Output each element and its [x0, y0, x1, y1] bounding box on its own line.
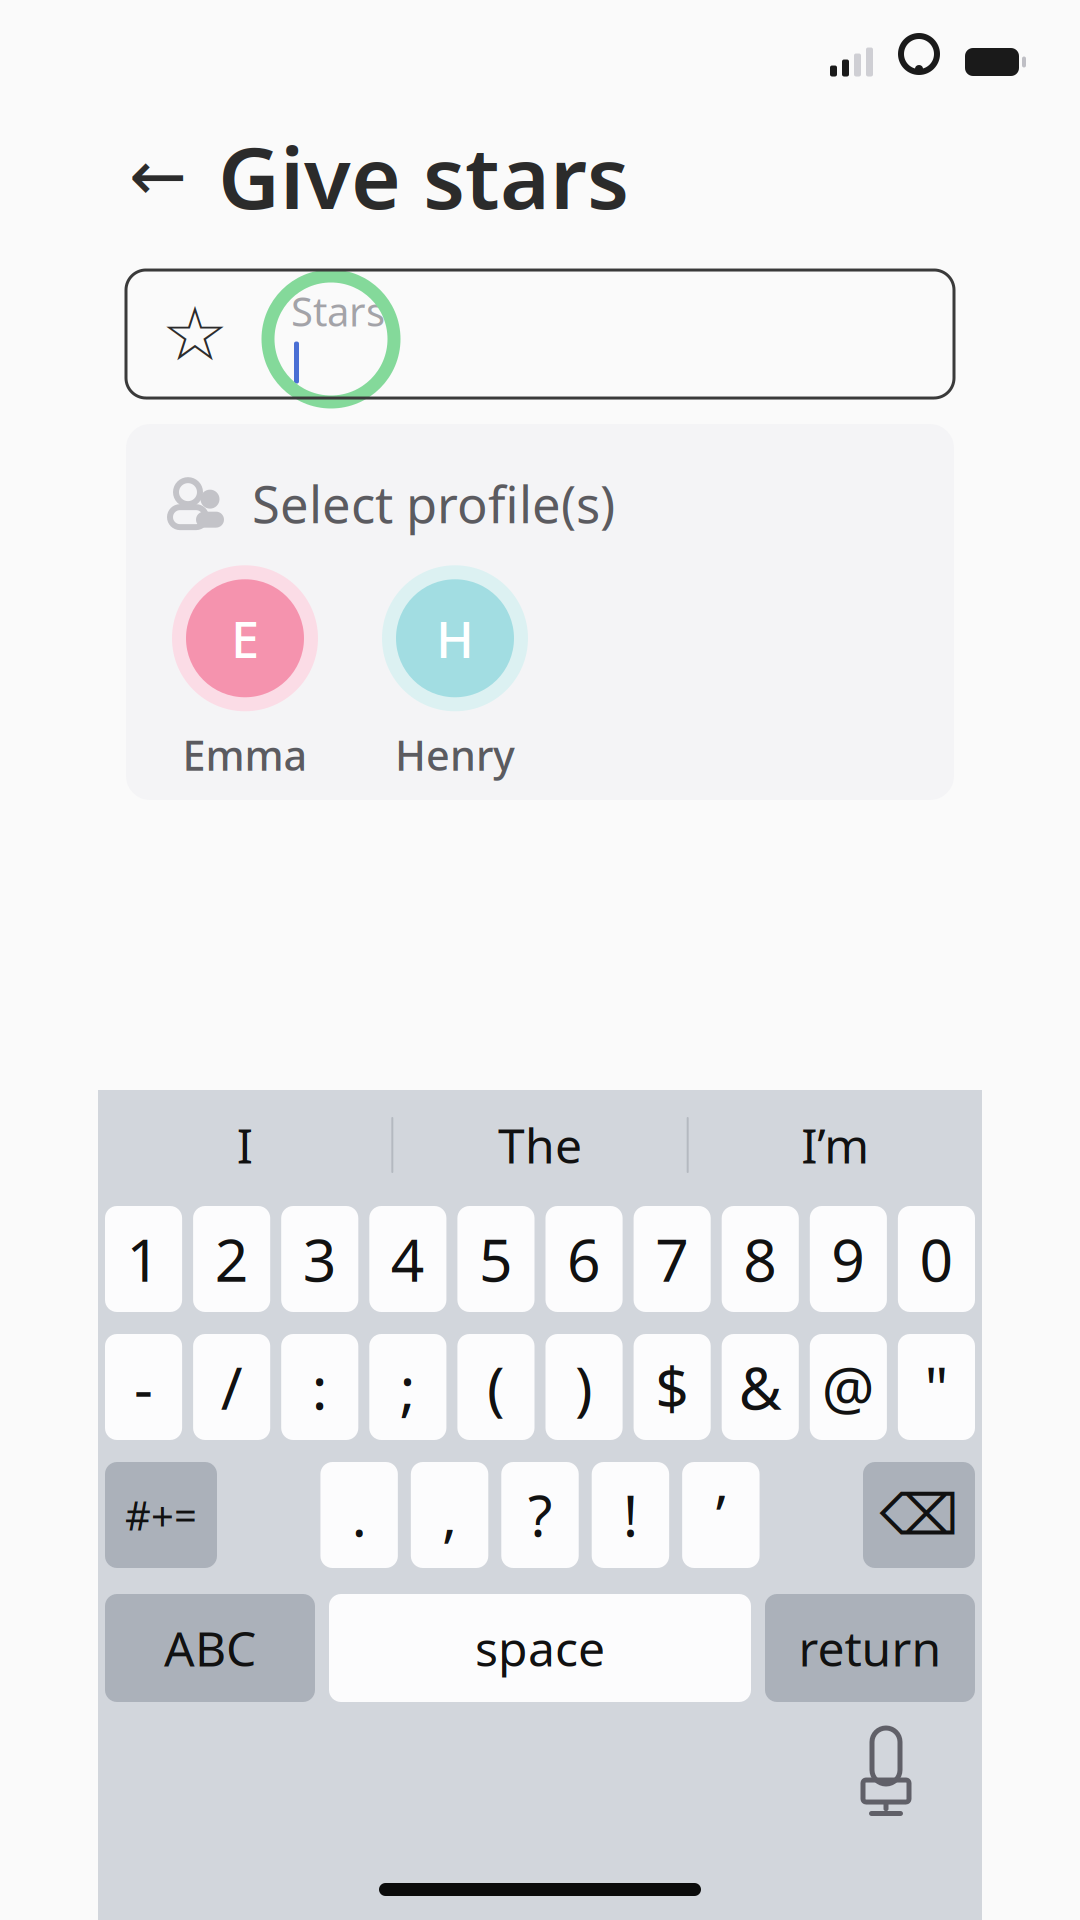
staticText: I’m [801, 1113, 869, 1177]
button[interactable]: 4 [369, 1206, 446, 1312]
button[interactable]: I [98, 1090, 391, 1200]
staticText: ; [400, 1348, 416, 1426]
staticText: 1 [127, 1220, 161, 1298]
staticText: Henry [395, 727, 515, 782]
button[interactable]: " [898, 1334, 975, 1440]
staticText: ? [528, 1478, 552, 1552]
button[interactable]: #+= [105, 1462, 217, 1568]
button[interactable]: / [193, 1334, 270, 1440]
button[interactable]: & [722, 1334, 799, 1440]
button[interactable]: 9 [810, 1206, 887, 1312]
staticText: @ [822, 1348, 875, 1426]
staticText: Select profile(s) [252, 470, 615, 537]
staticText: I [237, 1113, 253, 1177]
staticText: Give stars [218, 119, 629, 233]
staticText: . [352, 1478, 367, 1552]
staticText: ’ [716, 1478, 726, 1552]
staticText: space [475, 1616, 605, 1680]
staticText: ABC [164, 1616, 256, 1680]
button[interactable]: Back [126, 144, 190, 208]
button[interactable]: : [281, 1334, 358, 1440]
staticText: $ [655, 1348, 689, 1426]
button[interactable]: ’ [682, 1462, 759, 1568]
button[interactable]: . [320, 1462, 398, 1568]
button[interactable]: ; [369, 1334, 446, 1440]
button[interactable]: 8 [722, 1206, 799, 1312]
button[interactable]: Dictate [846, 1722, 926, 1822]
staticText: H [436, 605, 474, 672]
staticText: 0 [919, 1220, 953, 1298]
button[interactable]: I’m [689, 1090, 982, 1200]
button[interactable]: Delete [863, 1462, 975, 1568]
button[interactable]: 5 [457, 1206, 534, 1312]
staticText: 8 [743, 1220, 777, 1298]
staticText: Emma [182, 727, 307, 782]
button[interactable]: @ [810, 1334, 887, 1440]
staticText: ( [487, 1348, 505, 1426]
staticText: Stars [291, 284, 385, 337]
staticText: 5 [479, 1220, 513, 1298]
button[interactable]: space [329, 1594, 751, 1702]
staticText: 4 [391, 1220, 425, 1298]
button[interactable]: 0 [898, 1206, 975, 1312]
button[interactable]: ) [545, 1334, 623, 1440]
staticText: : [312, 1348, 328, 1426]
staticText: " [924, 1348, 948, 1426]
staticText: , [442, 1478, 457, 1552]
button[interactable]: ☆ [126, 270, 954, 398]
staticText: 6 [567, 1220, 601, 1298]
button[interactable]: return [765, 1594, 975, 1702]
staticText: 9 [831, 1220, 865, 1298]
staticText: 2 [215, 1220, 249, 1298]
button[interactable]: - [105, 1334, 182, 1440]
staticText: ☆ [161, 292, 228, 376]
button[interactable]: E [156, 563, 334, 782]
button[interactable]: 2 [193, 1206, 270, 1312]
staticText: - [134, 1348, 153, 1426]
staticText: The [498, 1113, 582, 1177]
staticText: & [739, 1348, 782, 1426]
button[interactable]: The [393, 1090, 687, 1200]
button[interactable]: 7 [634, 1206, 711, 1312]
button[interactable]: ABC [105, 1594, 315, 1702]
staticText: return [798, 1616, 941, 1680]
staticText: E [231, 605, 259, 672]
staticText: ← [129, 137, 187, 215]
button[interactable]: 6 [545, 1206, 623, 1312]
button[interactable]: ! [592, 1462, 669, 1568]
button[interactable]: 1 [105, 1206, 182, 1312]
button[interactable]: , [411, 1462, 488, 1568]
staticText: 7 [655, 1220, 689, 1298]
staticText: ) [575, 1348, 593, 1426]
button[interactable]: 3 [281, 1206, 358, 1312]
staticText: 3 [303, 1220, 337, 1298]
staticText: / [221, 1348, 243, 1426]
staticText: #+= [125, 1488, 197, 1541]
button[interactable]: ? [501, 1462, 579, 1568]
button[interactable]: H [366, 563, 544, 782]
button[interactable]: $ [634, 1334, 711, 1440]
button[interactable]: ( [457, 1334, 534, 1440]
staticText: ! [623, 1478, 638, 1552]
staticText: ⌫ [879, 1483, 958, 1547]
button[interactable]: Give stars [218, 119, 629, 233]
